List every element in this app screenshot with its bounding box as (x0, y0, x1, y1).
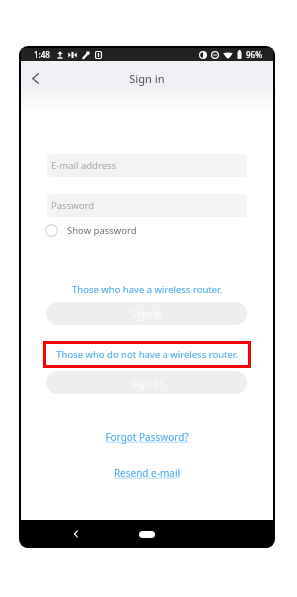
staticText: 96% (246, 49, 262, 60)
staticText: Sign in (21, 71, 273, 86)
button[interactable]: Show password (45, 222, 137, 238)
button[interactable]: Back (69, 527, 83, 541)
button[interactable]: Those who have a wireless router. (21, 283, 273, 296)
staticText: Password (51, 199, 94, 212)
staticText: 1:48 (34, 49, 50, 60)
button[interactable]: Back (25, 68, 45, 88)
staticText: Show password (67, 224, 137, 237)
button[interactable]: Forgot Password? (21, 430, 273, 444)
staticText: Sign in (131, 376, 163, 390)
staticText: E-mail address (51, 159, 117, 172)
button[interactable]: Password (47, 194, 247, 217)
button[interactable]: E-mail address (47, 154, 247, 177)
staticText: Sign in (131, 307, 163, 321)
button[interactable]: Home (139, 531, 155, 538)
button[interactable]: Resend e-mail (21, 466, 273, 480)
staticText: Those who do not have a wireless router. (56, 348, 238, 361)
button[interactable]: Those who do not have a wireless router. (43, 341, 251, 368)
